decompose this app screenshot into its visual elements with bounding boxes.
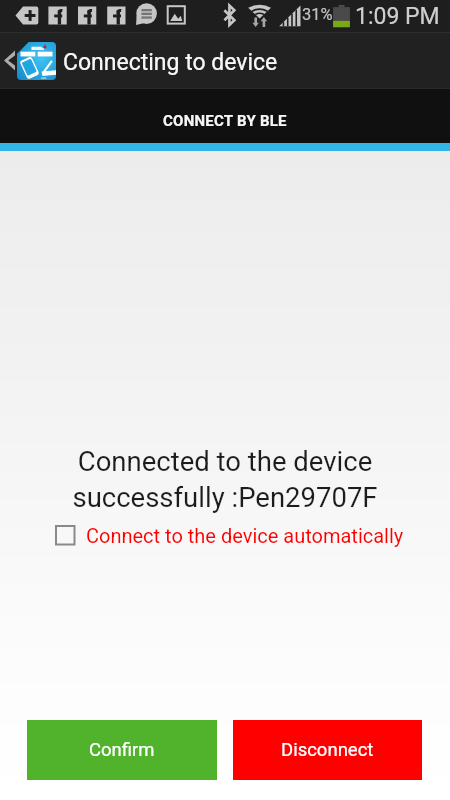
staticText: Connected to the device successfully :Pe…	[72, 445, 378, 513]
staticText: CONNECT BY BLE	[163, 112, 287, 130]
staticText: 31%	[302, 5, 333, 24]
staticText: Connect to the device automatically	[86, 524, 404, 547]
button[interactable]: CONNECT BY BLE	[0, 89, 450, 143]
staticText: 1:09 PM	[355, 3, 440, 30]
button[interactable]: Disconnect	[233, 720, 422, 780]
button[interactable]: Navigate up	[0, 32, 56, 89]
button[interactable]: Confirm	[27, 720, 217, 780]
staticText: Connecting to device	[63, 49, 278, 76]
staticText: Confirm	[89, 739, 155, 761]
staticText: Disconnect	[281, 739, 374, 761]
button[interactable]: Connect to the device automatically	[55, 524, 404, 547]
